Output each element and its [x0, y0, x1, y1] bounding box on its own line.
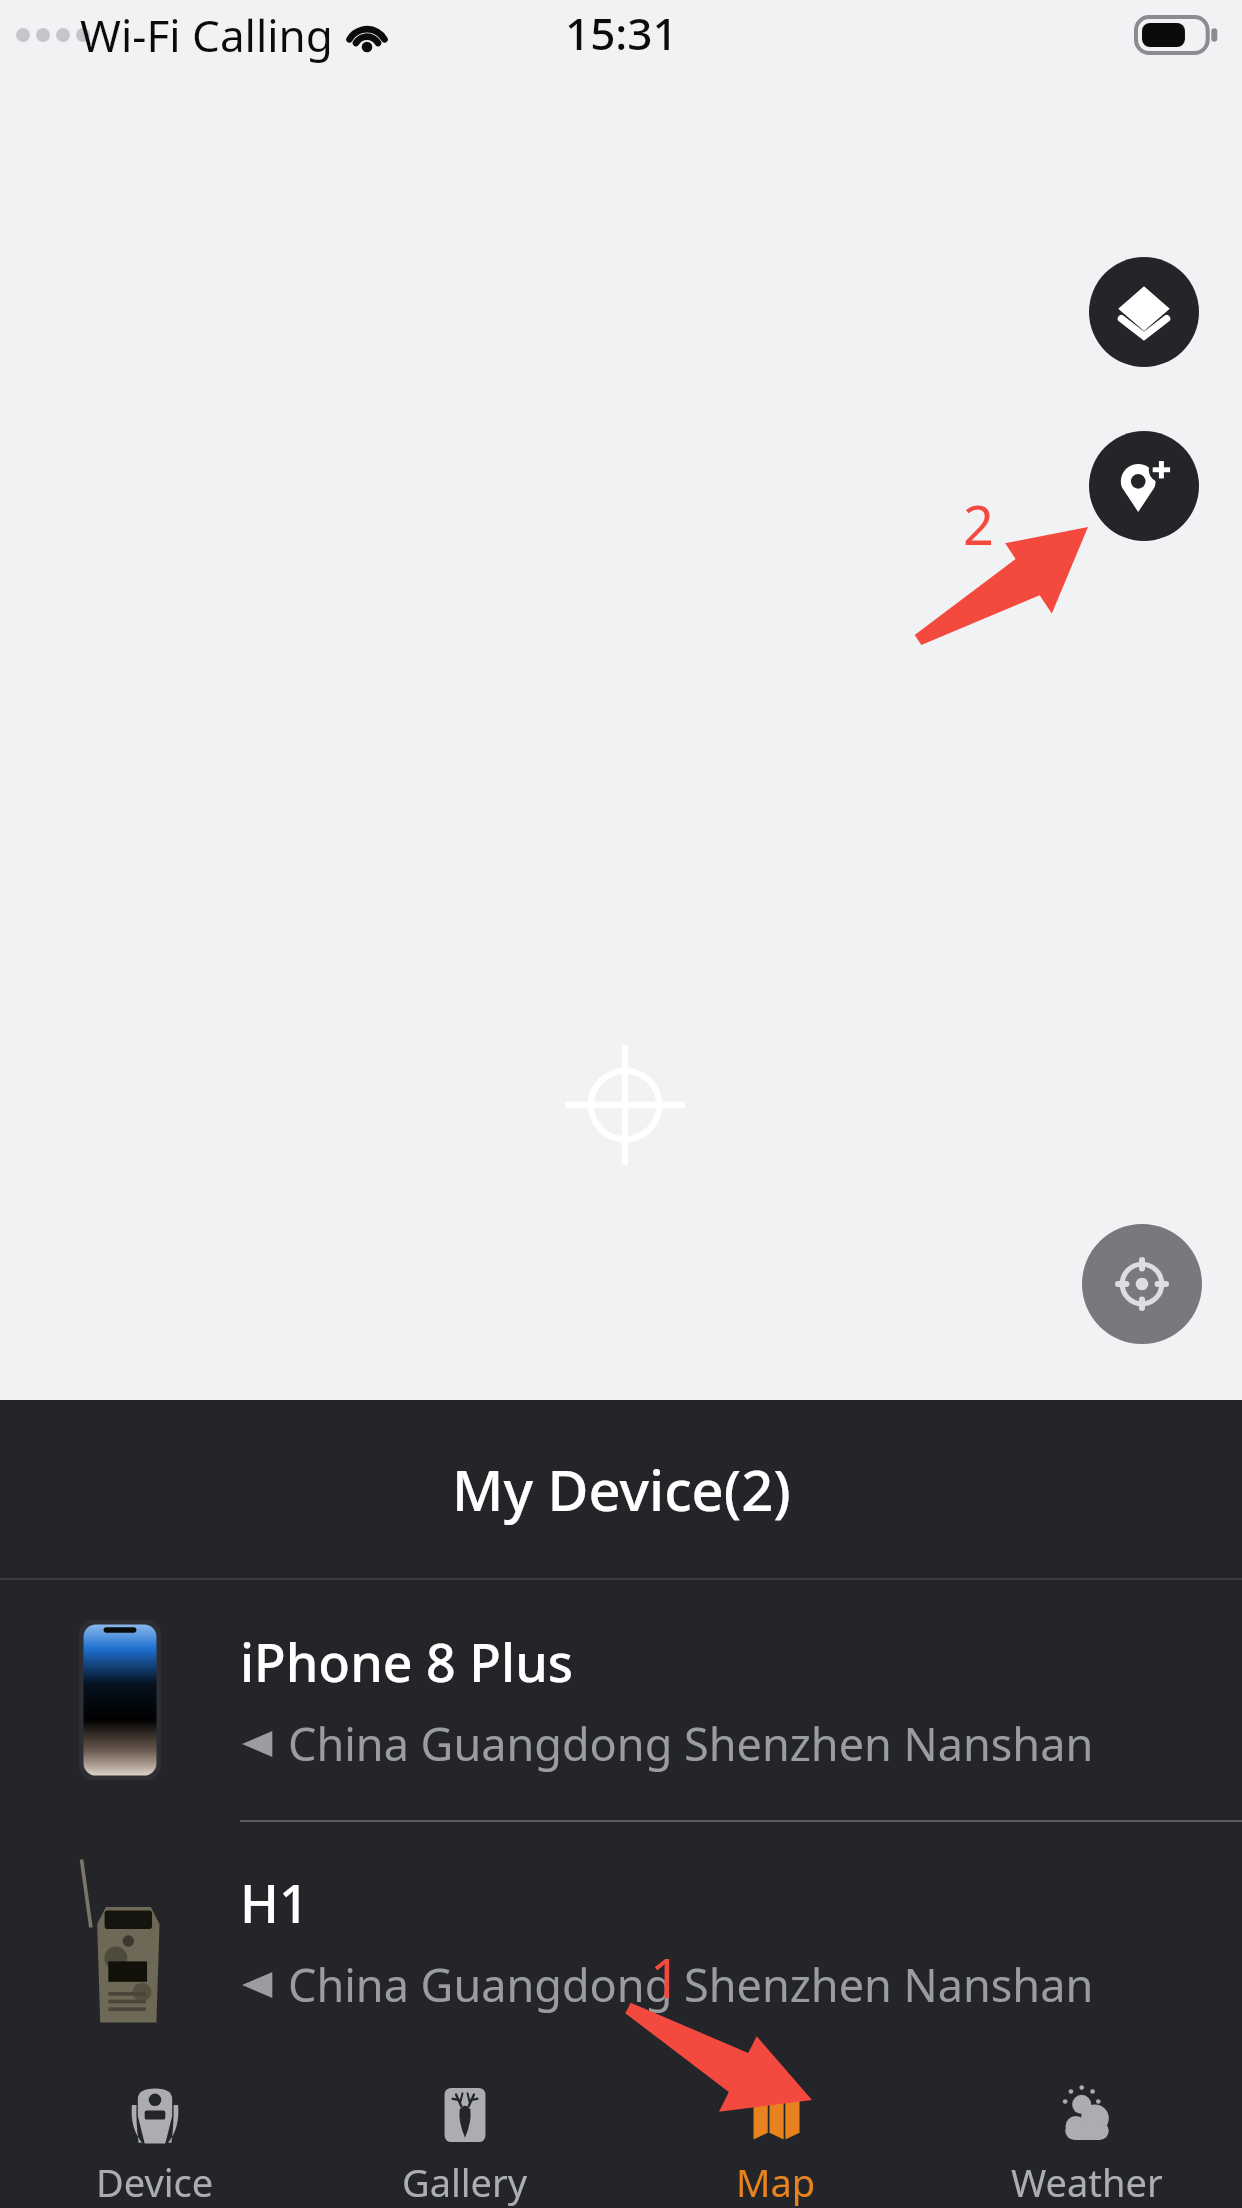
- staticText: 2: [963, 487, 994, 561]
- staticText: Map: [736, 2156, 816, 2208]
- button[interactable]: Add marker: [1089, 431, 1199, 541]
- staticText: Wi-Fi Calling: [80, 5, 333, 65]
- button[interactable]: My location: [1082, 1224, 1202, 1344]
- staticText: China Guangdong Shenzhen Nanshan: [288, 1713, 1094, 1774]
- button[interactable]: Map layers: [1089, 257, 1199, 367]
- button[interactable]: Device: [0, 2060, 310, 2208]
- staticText: iPhone 8 Plus: [240, 1626, 574, 1697]
- staticText: H1: [240, 1867, 309, 1938]
- staticText: My Device(2): [452, 1451, 791, 1527]
- staticText: Device: [96, 2156, 214, 2208]
- staticText: 1: [650, 1940, 681, 2014]
- button[interactable]: Map: [620, 2060, 931, 2208]
- button[interactable]: Gallery: [310, 2060, 620, 2208]
- staticText: 15:31: [565, 3, 678, 63]
- staticText: Weather: [1011, 2156, 1163, 2208]
- button[interactable]: Weather: [931, 2060, 1242, 2208]
- staticText: China Guangdong Shenzhen Nanshan: [288, 1954, 1094, 2015]
- button[interactable]: H1: [0, 1822, 1242, 2060]
- staticText: Gallery: [402, 2156, 528, 2208]
- button[interactable]: iPhone 8 Plus: [0, 1580, 1242, 1820]
